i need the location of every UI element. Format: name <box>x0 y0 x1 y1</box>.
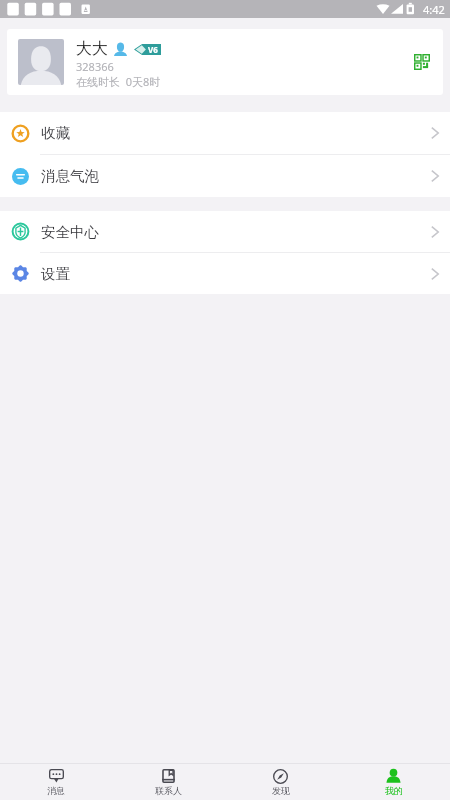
staticText: 联系人 <box>155 785 182 796</box>
staticText: 328366 <box>76 59 114 74</box>
staticText: 安全中心 <box>41 223 99 241</box>
staticText: 消息 <box>47 785 65 796</box>
button[interactable]: 我的 <box>337 764 450 800</box>
staticText: 收藏 <box>41 124 70 142</box>
staticText: 消息气泡 <box>41 167 99 185</box>
staticText: 在线时长 0天8时 <box>76 74 161 89</box>
button[interactable]: 设置 <box>0 253 450 294</box>
button[interactable]: 消息 <box>0 764 112 800</box>
button[interactable]: 联系人 <box>112 764 224 800</box>
button[interactable]: 收藏 <box>0 112 450 154</box>
button[interactable]: 大大 <box>7 29 443 95</box>
button[interactable]: 消息气泡 <box>0 155 450 197</box>
button[interactable]: 发现 <box>224 764 337 800</box>
staticText: 设置 <box>41 265 70 283</box>
staticText: 发现 <box>272 785 290 796</box>
button[interactable]: 安全中心 <box>0 211 450 252</box>
staticText: 我的 <box>385 785 403 796</box>
staticText: 4:42 <box>423 2 445 17</box>
staticText: V6 <box>148 44 158 55</box>
button[interactable]: QR code scan <box>410 50 434 74</box>
staticText: 大大 <box>76 39 108 59</box>
